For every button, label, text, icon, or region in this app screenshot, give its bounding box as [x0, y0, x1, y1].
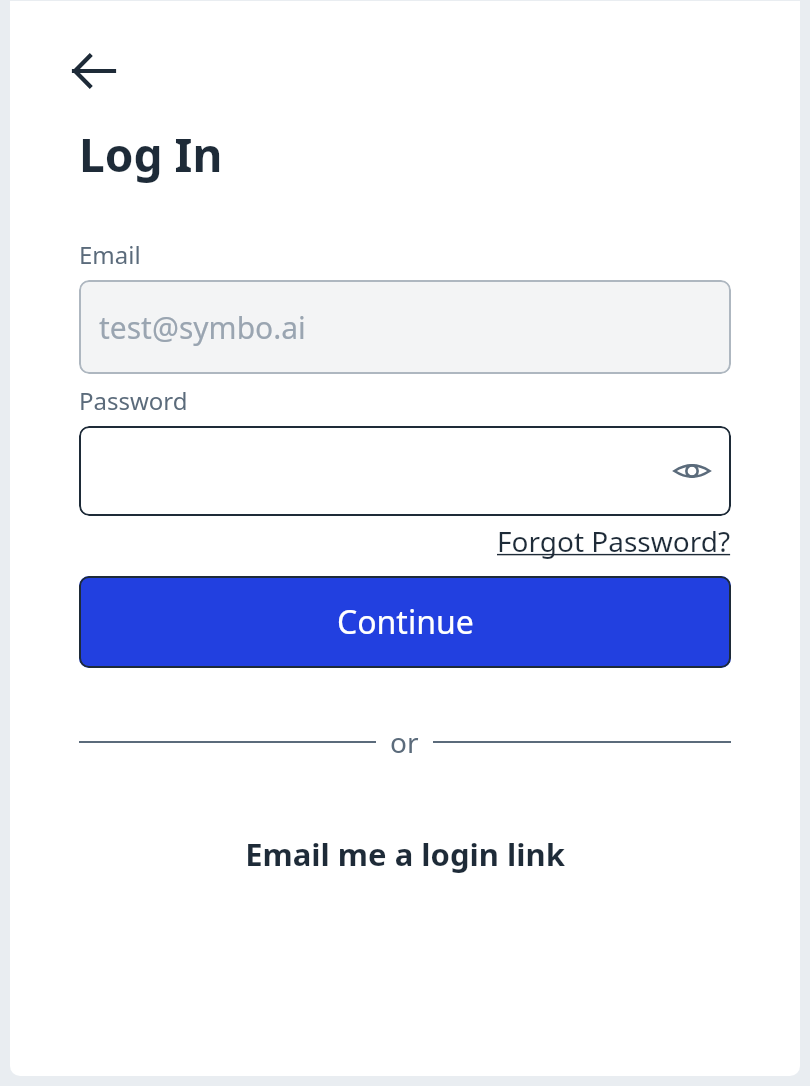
staticText: Forgot Password? — [497, 522, 731, 560]
staticText: or — [390, 723, 419, 761]
button[interactable]: Forgot Password? — [497, 522, 731, 560]
button[interactable]: Email me a login link — [10, 833, 800, 875]
button[interactable]: test@symbo.ai — [79, 280, 731, 374]
staticText: Email — [79, 238, 141, 271]
button[interactable]: Show password — [665, 444, 719, 498]
staticText: test@symbo.ai — [99, 307, 306, 348]
button[interactable]: Show password — [79, 426, 731, 516]
staticText: Password — [79, 384, 188, 417]
button[interactable]: Back — [66, 43, 122, 99]
button[interactable]: Continue — [79, 576, 731, 668]
staticText: Continue — [337, 600, 474, 644]
staticText: Email me a login link — [245, 833, 565, 875]
staticText: Log In — [79, 123, 223, 186]
